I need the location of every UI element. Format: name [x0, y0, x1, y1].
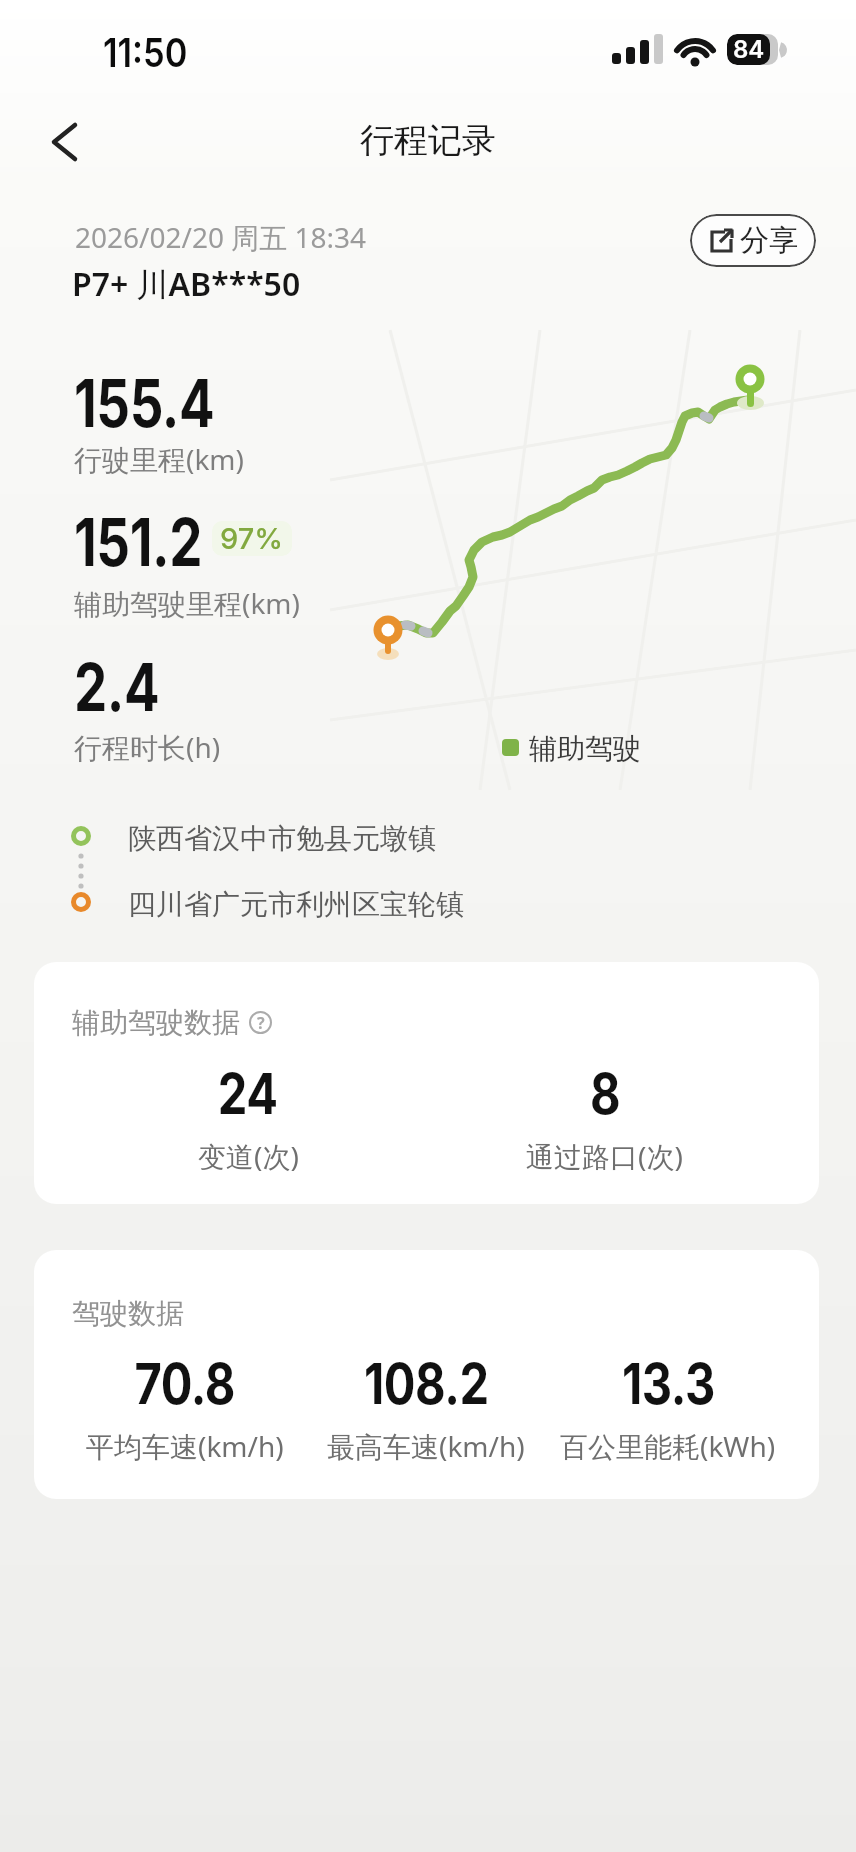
staticText: 最高车速(km/h) [327, 1427, 525, 1465]
staticText: 8 [590, 1060, 620, 1128]
staticText: 驾驶数据 [72, 1296, 184, 1331]
staticText: 108.2 [364, 1350, 489, 1418]
staticText: 155.4 [74, 363, 215, 443]
staticText: 行程记录 [360, 119, 496, 162]
staticText: 24 [218, 1060, 278, 1128]
staticText: 行程时长(h) [74, 728, 221, 766]
staticText: 13.3 [622, 1350, 715, 1418]
staticText: 分享 [740, 222, 798, 259]
staticText: 四川省广元市利州区宝轮镇 [128, 887, 464, 922]
staticText: ? [257, 1012, 265, 1034]
staticText: 陕西省汉中市勉县元墩镇 [128, 821, 436, 856]
staticText: 百公里能耗(kWh) [560, 1427, 776, 1465]
staticText: 70.8 [135, 1350, 235, 1418]
staticText: 2.4 [74, 647, 160, 727]
staticText: 辅助驾驶数据 [72, 1005, 240, 1040]
staticText: 2026/02/20 周五 18:34 [75, 218, 367, 256]
staticText: 通过路口(次) [526, 1137, 683, 1175]
staticText: 行驶里程(km) [74, 440, 244, 478]
staticText: 变道(次) [198, 1137, 299, 1175]
staticText: 151.2 [74, 502, 203, 582]
staticText: 97% [220, 521, 284, 556]
staticText: 平均车速(km/h) [86, 1427, 284, 1465]
button[interactable] [44, 116, 88, 168]
staticText: 辅助驾驶里程(km) [74, 584, 300, 622]
button[interactable]: ? [249, 1011, 272, 1034]
staticText: 11:50 [103, 28, 188, 76]
staticText: P7+ 川AB***50 [72, 262, 301, 306]
staticText: 辅助驾驶 [529, 731, 641, 766]
button[interactable]: 分享 [690, 214, 816, 267]
staticText: 84 [733, 35, 765, 64]
